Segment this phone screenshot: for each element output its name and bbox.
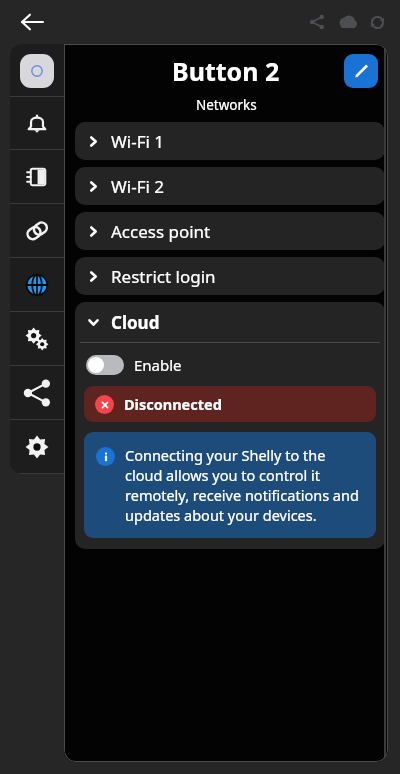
staticText: Access point: [111, 220, 211, 243]
staticText: Enable: [134, 355, 182, 375]
button[interactable]: Disconnected: [84, 386, 376, 422]
staticText: Button 2: [172, 54, 280, 88]
button[interactable]: Menu item: [10, 204, 64, 258]
staticText: Restrict login: [111, 265, 216, 288]
staticText: Disconnected: [124, 394, 222, 414]
button[interactable]: Menu item: [10, 258, 64, 312]
button[interactable]: Cloud: [75, 302, 385, 342]
staticText: Wi-Fi 2: [111, 175, 165, 198]
button[interactable]: Wi-Fi 2: [75, 167, 385, 205]
button[interactable]: Refresh: [364, 9, 390, 35]
button[interactable]: Enable: [86, 355, 385, 375]
button[interactable]: Wi-Fi 1: [75, 122, 385, 160]
staticText: Wi-Fi 1: [111, 130, 165, 153]
staticText: Networks: [196, 96, 257, 114]
button[interactable]: Restrict login: [75, 257, 385, 295]
button[interactable]: Edit: [344, 54, 378, 88]
button[interactable]: Back: [14, 4, 50, 40]
button[interactable]: Access point: [75, 212, 385, 250]
button[interactable]: Cloud: [334, 9, 360, 35]
staticText: Connecting your Shelly to the cloud allo…: [125, 445, 362, 525]
button[interactable]: Menu item: [10, 312, 64, 366]
button[interactable]: Menu item: [10, 366, 64, 420]
button[interactable]: Menu item: [10, 97, 64, 150]
button[interactable]: Menu item: [10, 150, 64, 204]
button[interactable]: Menu item: [10, 420, 64, 474]
staticText: Cloud: [111, 311, 160, 334]
button[interactable]: Share: [304, 9, 330, 35]
button[interactable]: Menu item: [10, 44, 64, 97]
